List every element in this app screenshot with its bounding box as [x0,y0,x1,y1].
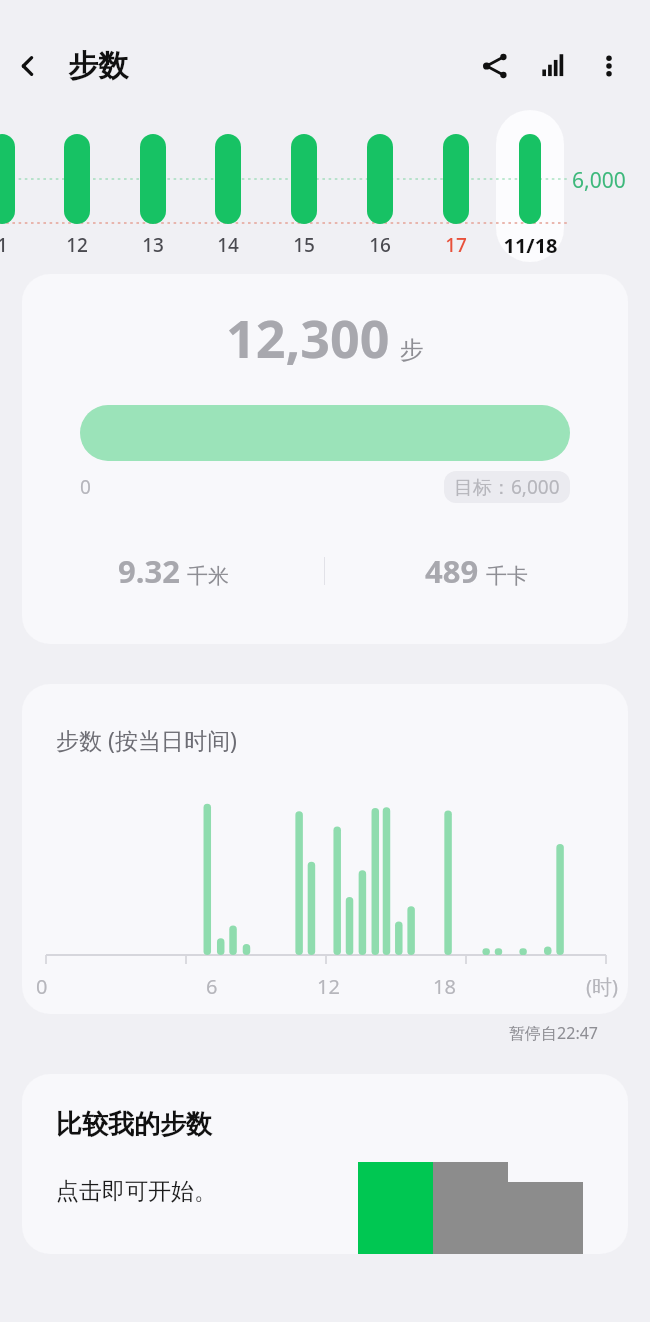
staticText: 16 [369,232,391,258]
button[interactable]: Chart [524,37,582,95]
staticText: 9.32 [118,550,180,592]
staticText: 比较我的步数 [56,1108,212,1141]
staticText: 步数 [68,47,128,85]
staticText: 13 [142,232,164,258]
staticText: 1 [0,232,8,258]
staticText: 6 [206,973,218,1000]
staticText: 11/18 [503,232,558,259]
staticText: 489 [425,550,479,592]
staticText: 12,300 [226,302,390,373]
staticText: 点击即可开始。 [56,1177,217,1206]
staticText: 18 [433,973,456,1000]
staticText: 12 [66,232,88,258]
button[interactable]: 比较我的步数 [22,1074,628,1254]
staticText: 千卡 [486,563,528,589]
button[interactable]: Share [466,37,524,95]
button[interactable] [496,110,564,262]
staticText: 千米 [187,563,229,589]
button[interactable]: 9.32 [22,547,324,595]
button[interactable]: 步数 (按当日时间) [22,684,628,1014]
staticText: 步数 (按当日时间) [56,724,237,755]
button[interactable]: 12,300 [22,274,628,644]
staticText: (时) [586,973,618,1000]
staticText: 15 [293,232,315,258]
staticText: 6,000 [572,166,626,195]
staticText: 17 [445,232,467,258]
staticText: 步 [400,335,424,365]
staticText: 0 [80,474,91,500]
staticText: 14 [217,232,239,258]
staticText: 暂停自22:47 [0,1022,598,1044]
staticText: 0 [36,973,48,1000]
staticText: 目标：6,000 [454,474,560,500]
button[interactable]: 489 [325,547,628,595]
button[interactable]: Back [0,38,56,94]
button[interactable]: More options [582,39,636,93]
staticText: 12 [317,973,340,1000]
